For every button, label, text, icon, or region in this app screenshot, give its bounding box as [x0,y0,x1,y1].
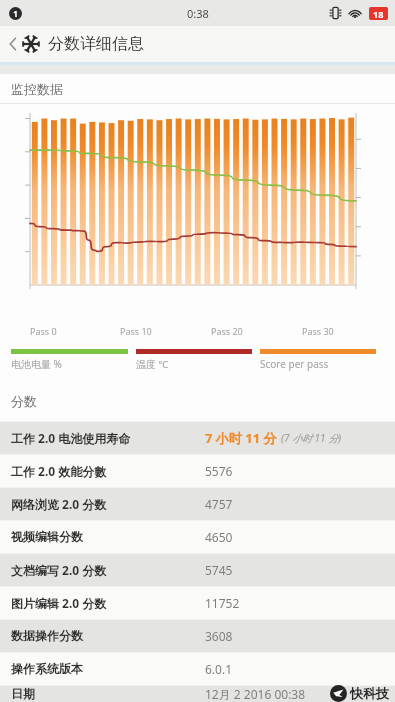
button[interactable]: Back [0,26,395,62]
staticText: Pass 10 [120,325,152,337]
staticText: 7 小时 11 分 [205,429,277,447]
staticText: 分数详细信息 [48,34,144,54]
staticText: 0:38 [187,6,209,21]
staticText: 工作 2.0 效能分數 [11,463,205,479]
staticText: (7 小时 11 分) [281,431,342,445]
button[interactable]: 工作 2.0 电池使用寿命 [0,421,395,454]
staticText: 温度 ℃ [136,357,169,371]
staticText: 图片编辑 2.0 分数 [11,595,205,611]
staticText: 电池电量 % [11,357,62,371]
staticText: 操作系统版本 [11,661,205,676]
button[interactable]: 图片编辑 2.0 分数 [0,586,395,619]
staticText: 5576 [205,463,233,479]
button[interactable]: 工作 2.0 效能分數 [0,454,395,487]
staticText: 11752 [205,595,240,611]
staticText: 18 [373,8,384,20]
staticText: Score per pass [260,357,329,371]
staticText: 分数 [11,393,37,409]
button[interactable]: 日期 [0,685,395,702]
staticText: 4757 [205,496,233,512]
staticText: 文档编写 2.0 分数 [11,562,205,578]
staticText: 日期 [11,686,205,701]
staticText: 监控数据 [11,81,63,97]
staticText: 5745 [205,562,233,578]
staticText: Pass 0 [30,325,57,337]
other: Vibrate mode [330,6,341,20]
other: Back [6,32,20,56]
staticText: 6.0.1 [205,661,233,677]
staticText: 视频编辑分数 [11,529,205,544]
staticText: 快科技 [350,685,389,701]
staticText: 工作 2.0 电池使用寿命 [11,430,205,446]
button[interactable]: 操作系统版本 [0,652,395,685]
staticText: 网络浏览 2.0 分数 [11,496,205,512]
staticText: 12月 2 2016 00:38 [205,686,306,702]
button[interactable]: 视频编辑分数 [0,520,395,553]
button[interactable]: 数据操作分数 [0,619,395,652]
staticText: 3608 [205,628,233,644]
staticText: Pass 20 [211,325,243,337]
staticText: Pass 30 [302,325,334,337]
staticText: 数据操作分数 [11,628,205,643]
staticText: 1 [13,8,18,19]
other: Wi-Fi [348,8,362,19]
button[interactable]: 网络浏览 2.0 分数 [0,487,395,520]
staticText: 4650 [205,529,233,545]
button[interactable]: 文档编写 2.0 分数 [0,553,395,586]
